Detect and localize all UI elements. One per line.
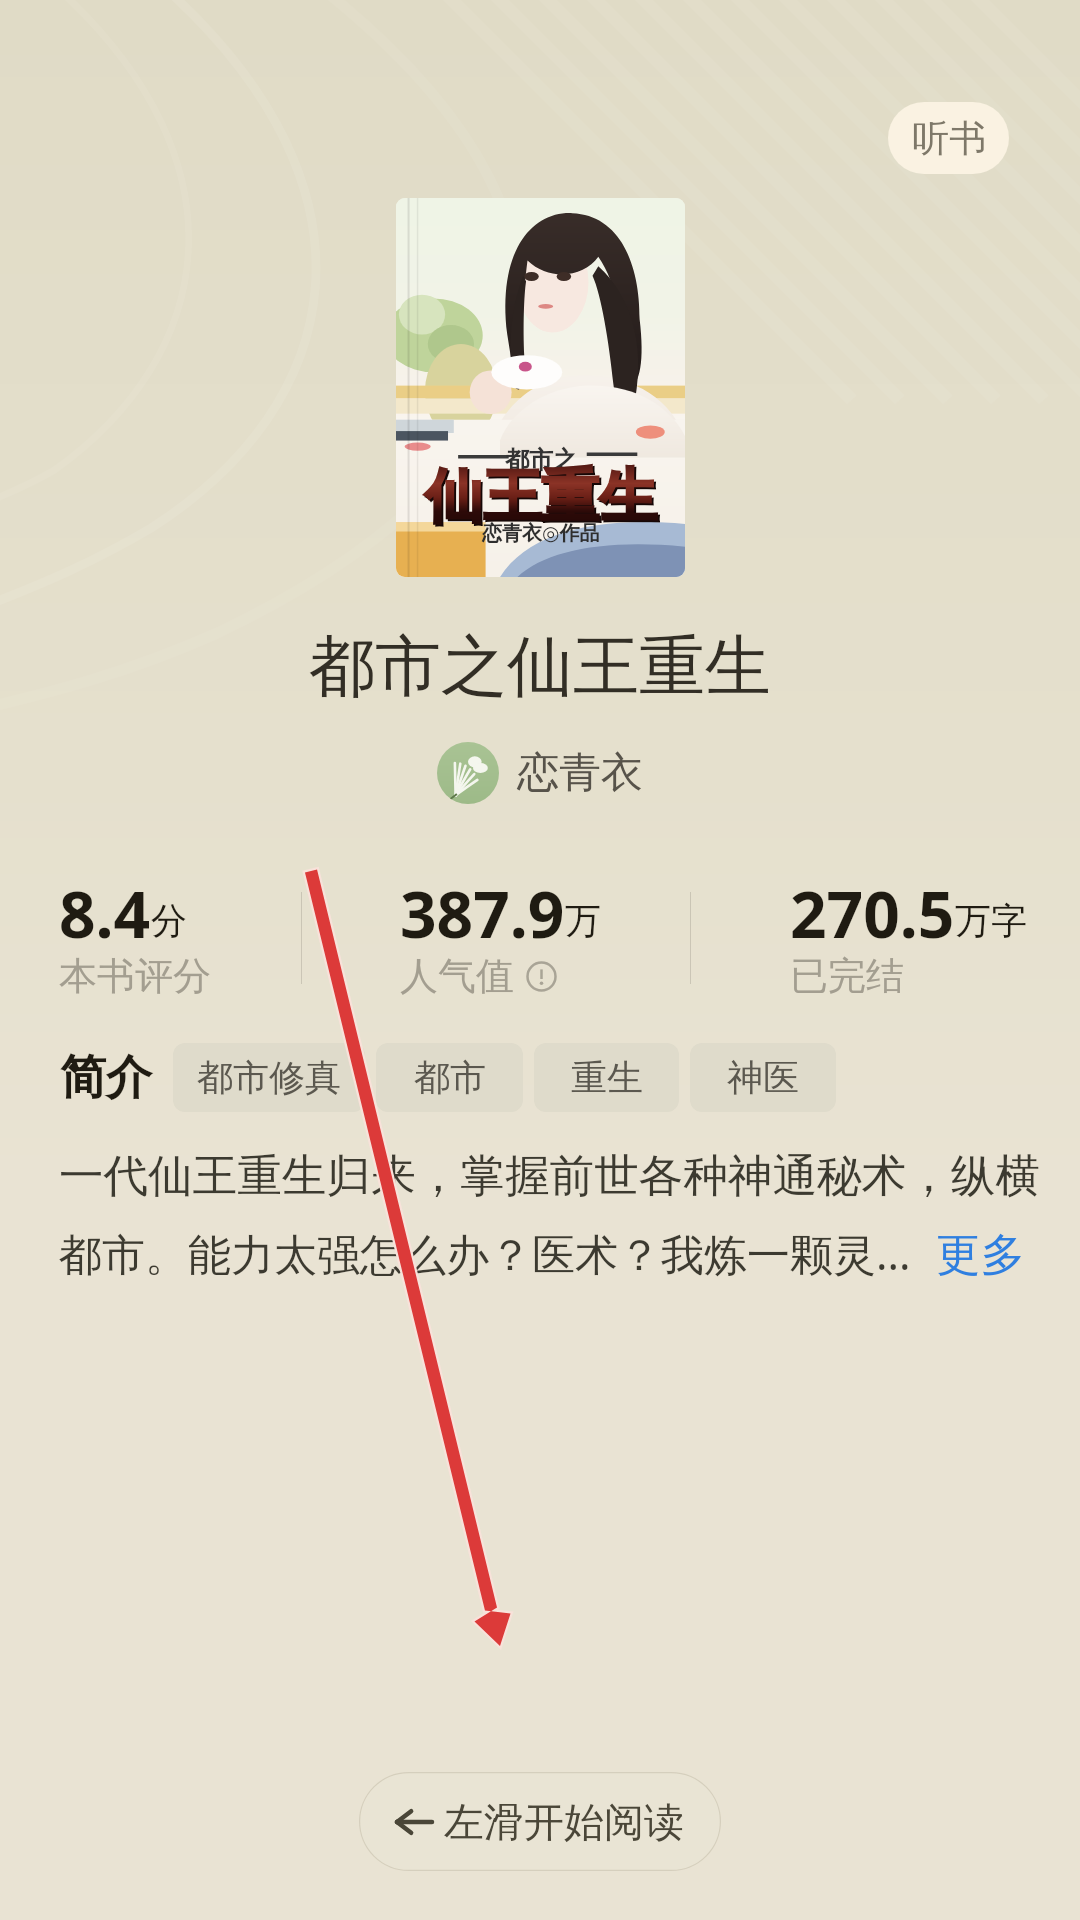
staticText: 仙王重生 xyxy=(427,462,659,535)
staticText: 都市 xyxy=(414,1055,486,1100)
button[interactable]: 神医 xyxy=(690,1043,836,1112)
button[interactable]: 重生 xyxy=(534,1043,679,1112)
staticText: 一代仙王重生归来，掌握前世各种神通秘术，纵横 xyxy=(59,1148,1041,1204)
staticText: 恋青衣◎作品 xyxy=(482,521,600,546)
staticText: 简介 xyxy=(60,1049,152,1107)
staticText: 270.5 xyxy=(790,870,955,957)
staticText: 本书评分 xyxy=(59,952,211,1000)
button[interactable]: 都市修真 xyxy=(173,1043,365,1112)
button[interactable]: 左滑开始阅读 xyxy=(359,1772,721,1871)
button[interactable]: 都市 xyxy=(376,1043,523,1112)
staticText: 万 xyxy=(565,898,601,943)
button[interactable]: 更多 xyxy=(936,1227,1026,1283)
staticText: 听书 xyxy=(912,115,986,162)
staticText: 387.9 xyxy=(400,870,565,957)
staticText: 都市修真 xyxy=(197,1055,341,1100)
button[interactable]: Book cover: 都市之仙王重生 xyxy=(396,198,685,577)
staticText: 恋青衣 xyxy=(517,747,643,800)
staticText: 仙王重生 xyxy=(425,460,657,533)
staticText: 人气值 xyxy=(400,952,514,1000)
staticText: 左滑开始阅读 xyxy=(444,1797,684,1847)
staticText: 都市之 xyxy=(505,445,577,475)
staticText: 已完结 xyxy=(790,952,904,1000)
staticText: 都市。能力太强怎么办？医术？我炼一颗灵... xyxy=(59,1224,911,1283)
button[interactable]: 恋青衣 xyxy=(437,742,643,804)
staticText: 8.4 xyxy=(59,870,151,957)
staticText: 万字 xyxy=(955,898,1027,943)
staticText: 神医 xyxy=(727,1055,799,1100)
button[interactable]: About popularity score xyxy=(526,961,557,992)
staticText: 都市之仙王重生 xyxy=(309,625,771,708)
button[interactable]: 听书 xyxy=(888,102,1009,174)
staticText: 分 xyxy=(151,898,187,943)
staticText: 重生 xyxy=(571,1055,643,1100)
